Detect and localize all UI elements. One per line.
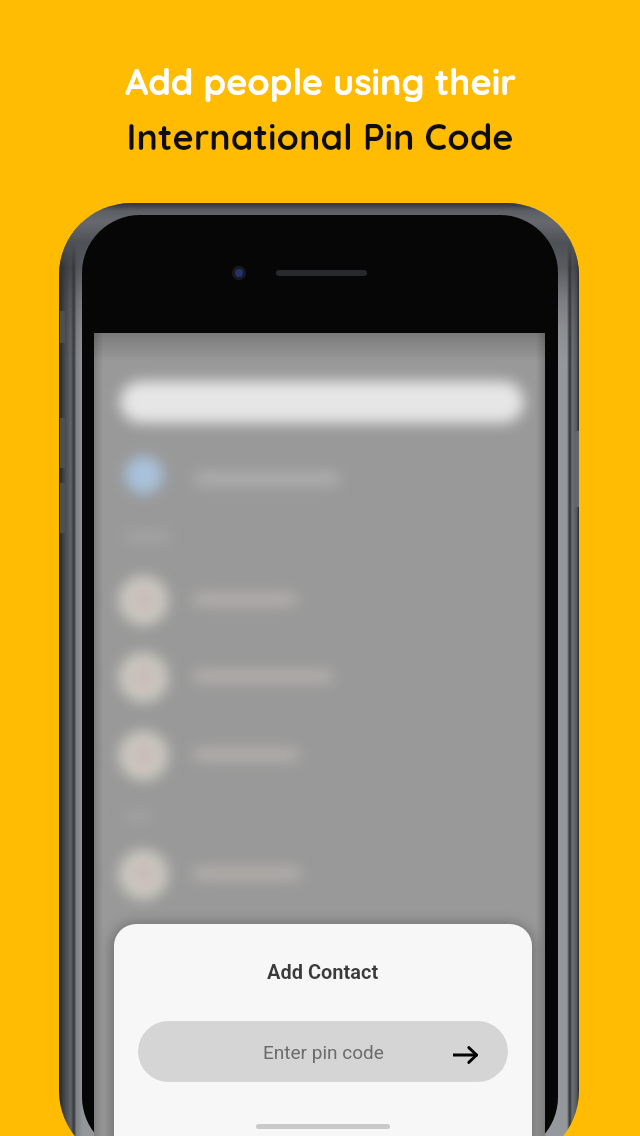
staticText: Add people using their [125, 59, 516, 104]
staticText: Add Contact [267, 960, 379, 983]
button[interactable]: Enter pin code [138, 1021, 508, 1082]
staticText: International Pin Code [126, 114, 514, 159]
staticText: Enter pin code [263, 1041, 384, 1063]
button[interactable]: Submit pin code [444, 1034, 486, 1076]
